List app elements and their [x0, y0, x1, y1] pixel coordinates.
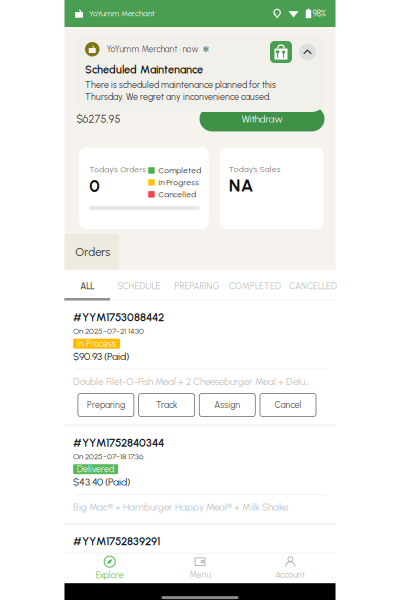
button[interactable]: Assign	[199, 393, 255, 416]
staticText: $90.93 (Paid)	[73, 350, 129, 363]
staticText: YoYumm Merchant	[89, 9, 155, 18]
button[interactable]: CANCELLED	[284, 270, 342, 300]
staticText: #YYM1752839291	[73, 534, 160, 548]
staticText: Big Mac® + Hamburger Happy Meal® + Milk …	[73, 501, 289, 513]
staticText: ALL	[80, 281, 94, 292]
staticText: There is scheduled maintenance planned f…	[85, 80, 276, 90]
staticText: NA	[229, 175, 254, 196]
button[interactable]: Collapse notification	[299, 43, 316, 60]
staticText: Withdraw	[241, 113, 282, 125]
staticText: In Progress	[158, 177, 199, 187]
staticText: Orders	[75, 245, 110, 259]
staticText: PREPARING	[174, 281, 219, 292]
staticText: Completed	[158, 165, 201, 175]
staticText: #YYM1753088442	[73, 310, 164, 324]
button[interactable]: ALL	[64, 270, 110, 300]
staticText: #YYM1752840344	[73, 436, 164, 449]
staticText: Account	[275, 570, 305, 580]
staticText: Total Balance	[75, 95, 126, 105]
staticText: YoYumm Merchant · now	[106, 44, 198, 54]
button[interactable]: Menu	[155, 553, 245, 583]
button[interactable]: Preparing	[78, 393, 134, 416]
staticText: SCHEDULE	[117, 281, 160, 292]
staticText: Cancel	[274, 400, 301, 410]
staticText: Menu	[189, 570, 210, 580]
staticText: Scheduled Maintenance	[85, 63, 203, 76]
staticText: 98%	[312, 8, 325, 19]
button[interactable]: Withdraw	[199, 106, 324, 131]
staticText: On 2025-07-18 17:36	[73, 451, 143, 461]
staticText: 0	[89, 175, 99, 196]
button[interactable]: Cancel	[260, 393, 316, 416]
button[interactable]: #YYM1752839291	[64, 524, 335, 554]
staticText: ✻	[202, 45, 209, 54]
button[interactable]: Account	[245, 553, 335, 583]
staticText: Today's Orders	[89, 164, 146, 174]
button[interactable]: #YYM1752840344	[64, 426, 335, 523]
button[interactable]: #YYM1753088442	[64, 300, 335, 424]
staticText: Double Filet-O-Fish Meal + 2 Cheeseburge…	[73, 376, 310, 387]
staticText: On 2025-07-21 14:30	[73, 326, 144, 336]
staticText: Assign	[214, 400, 240, 410]
button[interactable]: Track	[139, 393, 195, 416]
staticText: Preparing	[87, 400, 125, 410]
button[interactable]: Explore	[65, 553, 155, 583]
staticText: $43.40 (Paid)	[73, 476, 130, 488]
staticText: In Process	[77, 338, 116, 349]
staticText: CANCELLED	[289, 281, 337, 292]
staticText: $6275.95	[76, 112, 120, 125]
button[interactable]: COMPLETED	[226, 270, 284, 300]
staticText: Delivered	[77, 464, 114, 474]
staticText: COMPLETED	[229, 281, 281, 292]
staticText: Thursday. We regret any inconvenience ca…	[85, 92, 271, 102]
staticText: Track	[156, 400, 177, 410]
button[interactable]: PREPARING	[168, 270, 226, 300]
button[interactable]: SCHEDULE	[110, 270, 168, 300]
staticText: Explore	[96, 570, 124, 580]
staticText: Cancelled	[158, 189, 196, 199]
staticText: Today's Sales	[229, 164, 281, 174]
